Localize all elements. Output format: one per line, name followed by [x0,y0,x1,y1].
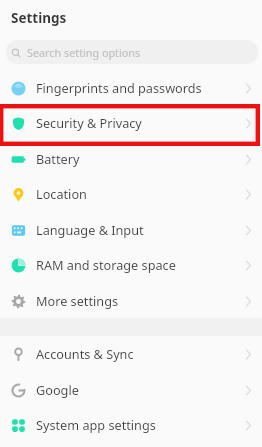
button[interactable]: Fingerprints and passwords [0,70,262,106]
staticText: More settings [36,292,119,309]
button[interactable]: System app settings [0,407,262,443]
button[interactable]: Google [0,372,262,408]
button[interactable]: Security & Privacy [0,105,262,141]
button[interactable]: More settings [0,283,262,319]
staticText: Location [36,185,87,202]
button[interactable]: Language & Input [0,212,262,248]
staticText: Accounts & Sync [36,345,134,362]
button[interactable]: RAM and storage space [0,247,262,283]
staticText: Google [36,381,79,398]
staticText: Security & Privacy [36,114,142,131]
staticText: Search setting options [27,45,141,60]
staticText: Language & Input [36,221,144,238]
button[interactable]: Search setting options [6,40,258,64]
staticText: Fingerprints and passwords [36,79,202,96]
staticText: Battery [36,150,80,167]
button[interactable]: Battery [0,141,262,177]
staticText: Settings [11,9,67,27]
staticText: RAM and storage space [36,256,176,273]
button[interactable]: Location [0,176,262,212]
button[interactable]: Accounts & Sync [0,336,262,372]
staticText: System app settings [36,416,156,433]
